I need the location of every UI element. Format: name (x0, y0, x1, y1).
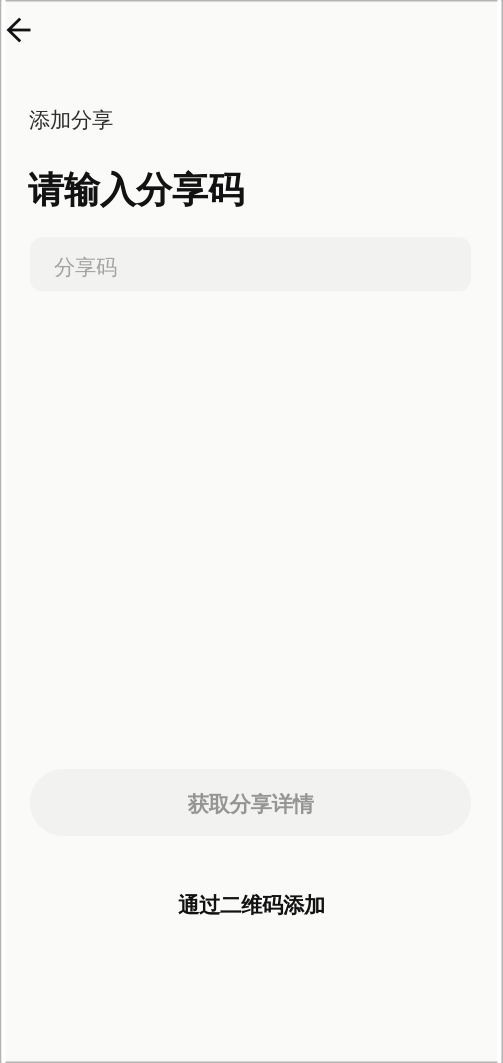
button[interactable]: 分享码 (30, 237, 471, 291)
staticText: 请输入分享码 (28, 168, 244, 212)
button[interactable]: 获取分享详情 (30, 769, 471, 836)
staticText: 分享码 (54, 254, 117, 280)
button[interactable]: 通过二维码添加 (0, 891, 503, 919)
button[interactable]: Back (0, 0, 62, 60)
staticText: 获取分享详情 (187, 791, 313, 818)
staticText: 添加分享 (29, 107, 113, 133)
staticText: 通过二维码添加 (178, 892, 325, 919)
